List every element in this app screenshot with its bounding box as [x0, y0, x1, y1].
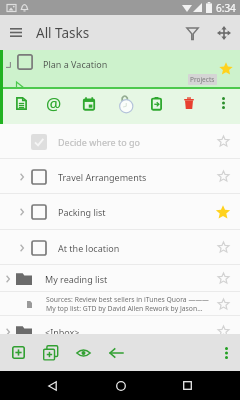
button[interactable]: Star Travel Arrangements [211, 159, 235, 194]
staticText: Packing list [58, 206, 211, 218]
button[interactable]: Due date [75, 89, 103, 117]
staticText: <Inbox> [45, 326, 211, 338]
button[interactable]: More options [211, 334, 240, 371]
button[interactable]: Sources: Review best sellers in iTunes Q… [0, 292, 240, 316]
button[interactable]: Star note [211, 292, 235, 316]
button[interactable]: Travel Arrangements [0, 159, 240, 194]
button[interactable]: Contexts [40, 89, 68, 117]
staticText: Decide where to go [58, 136, 211, 148]
button[interactable]: Star My reading list [211, 265, 235, 292]
staticText: Sources: Review best sellers in iTunes Q… [46, 295, 209, 304]
button[interactable]: Star Plan a Vacation [215, 58, 237, 80]
staticText: My top list: GTD by David Allen Rework b… [46, 304, 203, 313]
button[interactable]: More options [209, 89, 237, 117]
button[interactable]: Complete Plan a Vacation [17, 54, 33, 70]
button[interactable]: Move [208, 17, 240, 49]
button[interactable]: Recent apps [173, 371, 202, 400]
button[interactable]: Delete [175, 89, 203, 117]
button[interactable]: Star Packing list [211, 194, 235, 230]
button[interactable]: Packing list [0, 194, 240, 230]
button[interactable]: Move to list [142, 89, 170, 117]
button[interactable]: Decide where to go [0, 124, 240, 159]
staticText: At the location [58, 242, 211, 254]
staticText: Projects [190, 75, 215, 84]
button[interactable]: At the location [0, 230, 240, 265]
button[interactable]: Filter [176, 17, 208, 49]
button[interactable]: Star <Inbox> [211, 316, 235, 347]
button[interactable]: Reminder [111, 89, 139, 117]
button[interactable]: Note [7, 89, 35, 117]
button[interactable]: Back [101, 334, 131, 371]
staticText: Plan a Vacation [43, 58, 108, 70]
button[interactable]: Back [38, 371, 67, 400]
button[interactable]: Add task [3, 334, 33, 371]
staticText: All Tasks [36, 24, 90, 42]
button[interactable]: Projects [190, 75, 215, 84]
button[interactable]: Add multiple tasks [35, 334, 65, 371]
staticText: Travel Arrangements [58, 171, 211, 183]
staticText: @ [46, 92, 62, 115]
button[interactable]: Home [106, 371, 135, 400]
button[interactable]: Open navigation drawer [0, 15, 32, 50]
button[interactable]: Star At the location [211, 230, 235, 265]
staticText: 6:34 [216, 1, 236, 15]
button[interactable]: Show hidden [68, 334, 98, 371]
button[interactable]: My reading list [0, 265, 240, 292]
button[interactable]: <Inbox> [0, 316, 240, 347]
staticText: My reading list [45, 273, 211, 285]
button[interactable]: Star Decide where to go [211, 124, 235, 159]
